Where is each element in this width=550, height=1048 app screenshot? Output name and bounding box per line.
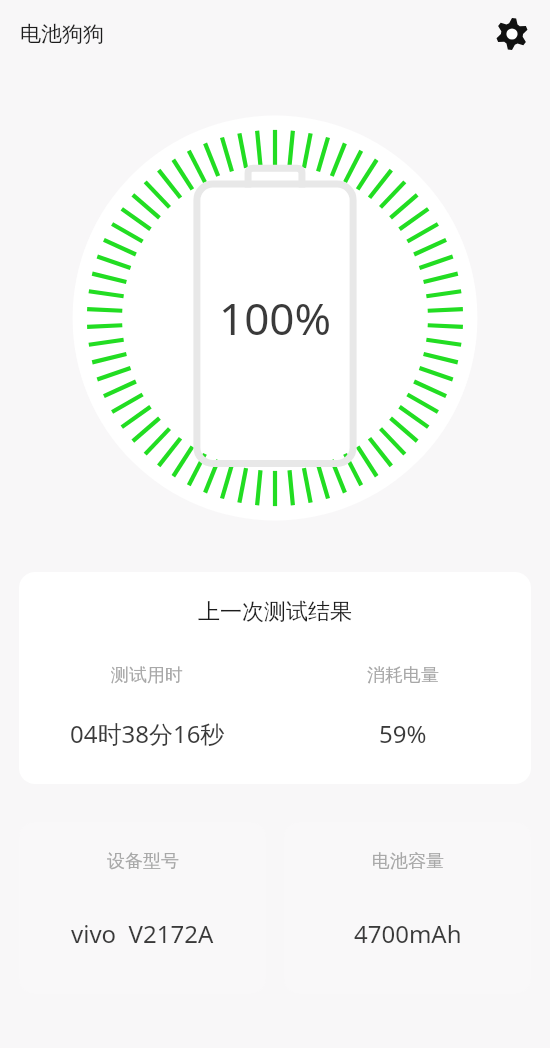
staticText: 4700mAh — [354, 917, 462, 950]
staticText: vivo V2172A — [71, 917, 214, 950]
button[interactable]: 设备型号 — [19, 822, 266, 994]
staticText: 04时38分16秒 — [70, 717, 225, 750]
staticText: 100% — [219, 288, 332, 348]
button[interactable]: Settings — [488, 10, 536, 58]
staticText: 电池容量 — [372, 850, 444, 873]
button[interactable]: 上一次测试结果 — [19, 572, 531, 784]
staticText: 设备型号 — [107, 850, 179, 873]
button[interactable]: 电池容量 — [284, 822, 531, 994]
staticText: 上一次测试结果 — [19, 598, 531, 626]
staticText: 59% — [379, 717, 427, 750]
staticText: 测试用时 — [111, 664, 183, 687]
staticText: 消耗电量 — [367, 664, 439, 687]
staticText: 电池狗狗 — [20, 21, 104, 47]
